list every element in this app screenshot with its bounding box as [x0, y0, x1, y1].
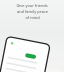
staticText: Give your friends: [16, 3, 48, 8]
staticText: and family peace: [17, 9, 48, 14]
staticText: of mind: [25, 15, 40, 20]
